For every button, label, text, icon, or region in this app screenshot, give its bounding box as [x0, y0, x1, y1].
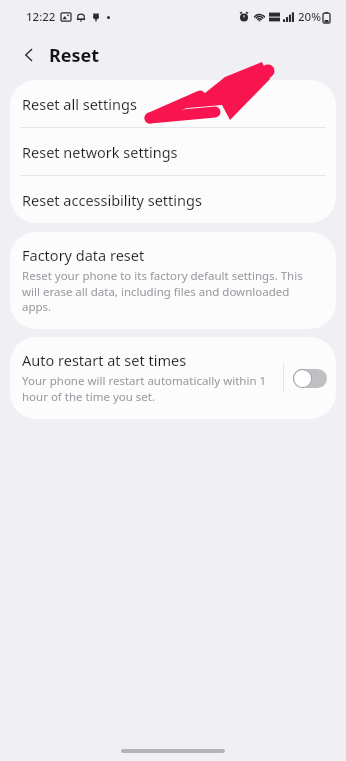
staticText: Auto restart at set times: [22, 350, 187, 370]
staticText: 12:22: [26, 9, 56, 25]
staticText: Reset network settings: [22, 142, 178, 162]
staticText: Your phone will restart automatically wi…: [22, 373, 277, 404]
button[interactable]: Reset accessibility settings: [10, 176, 336, 223]
staticText: 20%: [298, 9, 321, 25]
staticText: Reset all settings: [22, 94, 137, 114]
button[interactable]: Back: [13, 39, 45, 71]
staticText: Reset your phone to its factory default …: [22, 268, 318, 314]
button[interactable]: Auto restart at set times: [10, 337, 283, 419]
button[interactable]: Reset network settings: [10, 128, 336, 175]
button[interactable]: Factory data reset: [10, 232, 336, 329]
button[interactable]: Auto restart toggle: [291, 365, 329, 391]
button[interactable]: Reset all settings: [10, 80, 336, 127]
staticText: Factory data reset: [22, 245, 145, 265]
staticText: Reset: [49, 43, 100, 68]
staticText: Reset accessibility settings: [22, 190, 202, 210]
